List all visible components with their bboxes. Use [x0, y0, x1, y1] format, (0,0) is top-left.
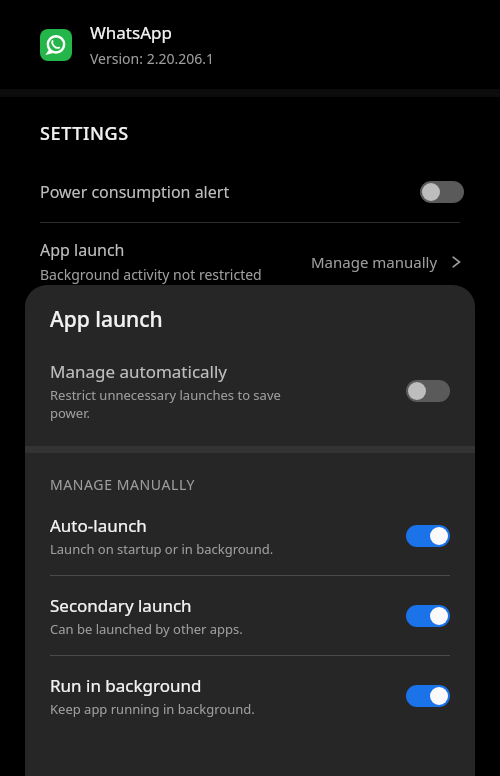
- button[interactable]: Auto-launch: [25, 514, 475, 558]
- staticText: Restrict unnecessary launches to save po…: [50, 386, 281, 422]
- button[interactable]: Power consumption alert: [0, 168, 500, 216]
- staticText: WhatsApp: [90, 21, 172, 44]
- staticText: Secondary launch: [50, 594, 192, 617]
- button[interactable]: [420, 181, 464, 203]
- staticText: Manage automatically: [50, 360, 228, 383]
- button[interactable]: Run in background: [25, 674, 475, 718]
- staticText: MANAGE MANUALLY: [50, 475, 196, 494]
- button[interactable]: [406, 380, 450, 402]
- staticText: Can be launched by other apps.: [50, 620, 243, 638]
- staticText: Auto-launch: [50, 514, 147, 537]
- staticText: App launch: [50, 305, 163, 334]
- button[interactable]: [406, 525, 450, 547]
- button[interactable]: App launch: [0, 239, 500, 284]
- staticText: Run in background: [50, 674, 202, 697]
- other: Open app launch settings: [448, 254, 464, 270]
- staticText: SETTINGS: [40, 121, 129, 146]
- staticText: Power consumption alert: [40, 181, 420, 203]
- staticText: Version: 2.20.206.1: [90, 49, 214, 68]
- button[interactable]: [406, 685, 450, 707]
- staticText: Keep app running in background.: [50, 700, 255, 718]
- staticText: Background activity not restricted: [40, 265, 262, 284]
- button[interactable]: WhatsApp: [0, 0, 500, 89]
- button[interactable]: Manage automatically: [25, 360, 475, 422]
- staticText: Launch on startup or in background.: [50, 540, 274, 558]
- staticText: Manage manually: [311, 252, 438, 272]
- button[interactable]: [406, 605, 450, 627]
- button[interactable]: Secondary launch: [25, 594, 475, 638]
- staticText: App launch: [40, 239, 125, 261]
